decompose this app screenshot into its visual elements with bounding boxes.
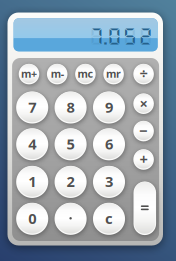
button[interactable]: Decimal point — [55, 203, 86, 234]
button[interactable]: m+ — [19, 64, 38, 83]
button[interactable]: c — [94, 203, 124, 234]
staticText: 3 — [105, 172, 113, 191]
staticText: 2 — [67, 172, 75, 191]
staticText: 8.888 — [94, 26, 148, 47]
button[interactable]: 6 — [94, 129, 124, 159]
button[interactable]: 0 — [17, 203, 47, 234]
button[interactable]: mc — [76, 64, 95, 83]
staticText: mc — [77, 66, 93, 81]
staticText: 0 — [28, 209, 36, 228]
button[interactable]: 9 — [94, 92, 124, 122]
button[interactable]: 5 — [55, 129, 86, 159]
staticText: + — [140, 149, 148, 169]
staticText: m+ — [21, 66, 37, 81]
staticText: m- — [51, 66, 64, 81]
staticText: mr — [106, 66, 121, 81]
button[interactable]: − — [134, 121, 153, 140]
staticText: − — [139, 121, 148, 140]
button[interactable]: 7 — [17, 92, 47, 122]
staticText: 1 — [28, 172, 36, 191]
staticText: 4 — [28, 134, 36, 154]
staticText: c — [105, 209, 113, 228]
button[interactable]: 4 — [17, 129, 47, 159]
button[interactable]: + — [134, 149, 153, 168]
button[interactable]: ÷ — [134, 64, 153, 83]
staticText: 9 — [105, 97, 113, 117]
staticText: × — [140, 93, 148, 113]
button[interactable]: mr — [104, 64, 123, 83]
staticText: 5 — [67, 134, 75, 154]
button[interactable]: × — [134, 94, 153, 113]
staticText: 7.052 — [94, 26, 148, 47]
button[interactable]: Equals — [134, 182, 155, 234]
staticText: 6 — [105, 134, 113, 154]
staticText: 8 — [67, 97, 75, 117]
button[interactable]: 8 — [55, 92, 86, 122]
button[interactable]: 2 — [55, 166, 86, 197]
staticText: ÷ — [140, 64, 148, 83]
button[interactable]: 1 — [17, 166, 47, 197]
button[interactable]: m- — [48, 64, 67, 83]
staticText: 7 — [28, 97, 36, 117]
button[interactable]: 3 — [94, 166, 124, 197]
